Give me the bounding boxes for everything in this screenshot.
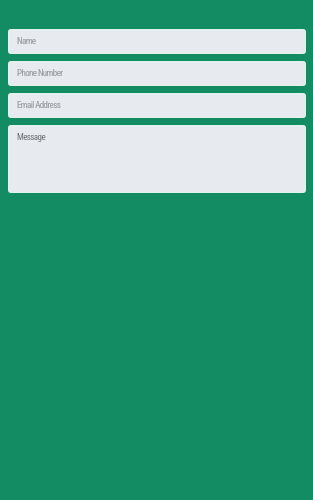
button[interactable]: Email Address (9, 94, 305, 117)
staticText: Message (17, 132, 45, 143)
button[interactable]: Name (9, 30, 305, 53)
staticText: Phone Number (17, 68, 63, 79)
button[interactable]: Phone Number (9, 62, 305, 85)
button[interactable]: Message (9, 126, 305, 192)
staticText: Name (17, 36, 36, 47)
staticText: Email Address (17, 100, 61, 111)
